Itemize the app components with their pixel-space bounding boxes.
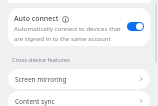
button[interactable]: Auto connect toggle <box>127 22 144 31</box>
staticText: Screen mirroring <box>15 75 67 84</box>
staticText: Automatically connect to devices that <box>14 24 121 32</box>
staticText: Cross-device features <box>12 56 71 64</box>
staticText: Auto connect <box>14 14 59 24</box>
button[interactable]: Content sync <box>8 91 150 106</box>
button[interactable]: Screen mirroring <box>8 69 150 89</box>
staticText: Content sync <box>15 97 55 106</box>
button[interactable]: Auto connect <box>8 8 150 46</box>
staticText: are signed in to the same account <box>14 34 111 42</box>
